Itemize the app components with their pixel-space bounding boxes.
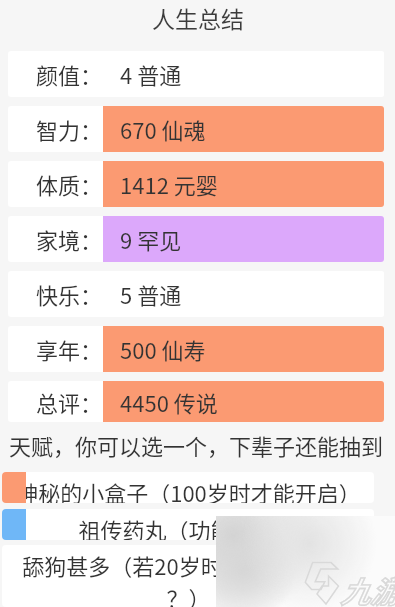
staticText: 颜值： [36, 58, 103, 90]
button[interactable]: 颜值： [8, 51, 384, 97]
staticText: 670 仙魂 [120, 113, 206, 145]
button[interactable]: 享年： [8, 326, 384, 372]
staticText: 4450 传说 [120, 386, 218, 418]
staticText: 总评： [36, 386, 103, 418]
staticText: 神秘的小盒子（100岁时才能开启） [16, 476, 361, 503]
staticText: 人生总结 [152, 1, 244, 34]
staticText: 500 仙寿 [120, 333, 206, 365]
staticText: 舔狗甚多（若20岁时仍单身，则自 ？） [22, 549, 355, 607]
button[interactable]: 体质： [8, 161, 384, 207]
staticText: 4 普通 [120, 58, 182, 90]
staticText: 体质： [36, 168, 103, 200]
staticText: 智力： [36, 113, 103, 145]
button[interactable]: 总评： [8, 381, 384, 422]
button[interactable]: 快乐： [8, 271, 384, 317]
button[interactable]: 舔狗甚多（若20岁时仍单身，则自 ？） [2, 545, 374, 607]
staticText: 天赋，你可以选一个，下辈子还能抽到 [9, 429, 384, 461]
staticText: 九游 [340, 568, 395, 607]
button[interactable]: 祖传药丸（功能未知） [2, 509, 374, 540]
staticText: 祖传药丸（功能未知） [78, 513, 299, 540]
staticText: 5 普通 [120, 278, 182, 310]
staticText: 家境： [36, 223, 103, 255]
staticText: 9 罕见 [120, 223, 182, 255]
staticText: 享年： [36, 333, 103, 365]
button[interactable]: 智力： [8, 106, 384, 152]
staticText: 快乐： [36, 278, 103, 310]
button[interactable]: 家境： [8, 216, 384, 262]
staticText: 1412 元婴 [120, 168, 218, 200]
button[interactable]: 神秘的小盒子（100岁时才能开启） [2, 472, 374, 503]
